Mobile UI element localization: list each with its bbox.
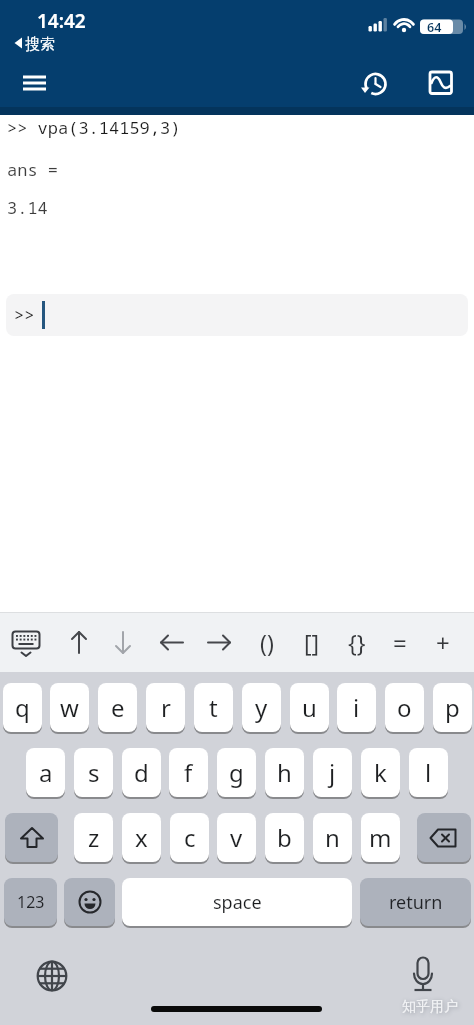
button[interactable]: c [170,813,209,862]
staticText: g [229,756,244,789]
staticText: u [302,691,317,724]
button[interactable]: e [98,683,137,732]
button[interactable]: 123 [4,878,57,926]
button[interactable]: [] [293,620,331,664]
button[interactable]: k [361,748,400,797]
button[interactable]: a [26,748,65,797]
staticText: n [325,821,340,854]
button[interactable]: u [290,683,329,732]
staticText: l [425,756,432,789]
button[interactable] [403,950,443,996]
button[interactable] [64,878,115,926]
staticText: t [209,691,218,724]
staticText: () [260,627,274,658]
staticText: k [374,756,387,789]
button[interactable]: w [50,683,89,732]
button[interactable] [357,66,393,102]
button[interactable]: y [242,683,281,732]
staticText: m [369,821,392,854]
button[interactable]: s [74,748,113,797]
staticText: 3.14 [7,196,48,219]
staticText: [] [304,627,320,658]
staticText: 搜索 [25,35,55,54]
staticText: = [393,626,407,659]
button[interactable] [424,66,458,102]
button[interactable] [14,68,54,100]
staticText: i [353,691,360,724]
button[interactable]: m [361,813,400,862]
staticText: f [184,756,193,789]
button[interactable] [60,620,98,664]
button[interactable]: = [381,620,419,664]
button[interactable] [417,813,471,862]
staticText: 知乎用户 [402,998,458,1016]
staticText: y [255,691,268,724]
staticText: >> [14,303,35,326]
button[interactable]: h [265,748,304,797]
staticText: d [134,756,149,789]
button[interactable]: j [313,748,352,797]
button[interactable]: q [3,683,42,732]
staticText: {} [348,627,366,658]
button[interactable] [6,620,50,664]
staticText: v [230,821,243,854]
staticText: x [135,821,148,854]
button[interactable] [200,620,238,664]
staticText: a [39,756,53,789]
button[interactable] [104,620,142,664]
button[interactable]: b [265,813,304,862]
staticText: 14:42 [37,8,86,34]
staticText: p [445,691,460,724]
staticText: 64 [427,19,442,36]
button[interactable]: v [217,813,256,862]
staticText: r [161,691,171,724]
staticText: + [436,626,450,659]
button[interactable]: l [409,748,448,797]
button[interactable]: x [122,813,161,862]
button[interactable]: {} [338,620,376,664]
button[interactable]: z [74,813,113,862]
button[interactable]: () [248,620,286,664]
staticText: e [111,691,125,724]
button[interactable]: r [146,683,185,732]
staticText: w [60,691,79,724]
staticText: s [88,756,100,789]
button[interactable]: space [122,878,352,926]
staticText: c [184,821,196,854]
staticText: h [277,756,292,789]
staticText: >> vpa(3.14159,3) [7,116,181,139]
button[interactable]: n [313,813,352,862]
button[interactable]: return [360,878,471,926]
staticText: j [329,756,336,789]
staticText: o [397,691,412,724]
button[interactable]: o [385,683,424,732]
button[interactable] [5,813,58,862]
button[interactable] [32,956,72,996]
button[interactable]: g [217,748,256,797]
button[interactable]: p [433,683,472,732]
staticText: q [15,691,30,724]
staticText: space [213,890,262,915]
staticText: return [389,890,443,915]
staticText: 123 [17,891,45,913]
staticText: z [88,821,100,854]
button[interactable]: t [194,683,233,732]
staticText: b [277,821,292,854]
staticText: ans = [7,158,58,181]
button[interactable] [153,620,191,664]
button[interactable]: d [122,748,161,797]
button[interactable]: f [169,748,208,797]
button[interactable]: i [337,683,376,732]
button[interactable]: >> [6,294,468,336]
button[interactable]: + [424,620,462,664]
